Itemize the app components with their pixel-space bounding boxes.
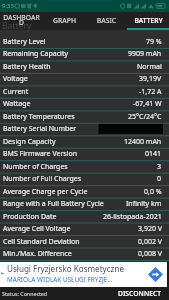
staticText: Cell Standard Deviation [3,237,80,247]
staticText: 26-listopada-2021 [103,212,162,222]
button[interactable]: Battery Temperatures [0,111,169,123]
staticText: BATTERY [129,16,168,25]
button[interactable]: Range with a Full Battery Cycle [0,198,169,210]
staticText: Number of Full Charges [3,174,82,184]
staticText: Min./Max. Difference [3,249,72,259]
staticText: Infinity km [126,199,162,209]
staticText: Normal [137,62,162,72]
button[interactable]: Number of Full Charges [0,173,169,185]
button[interactable]: Battery Health [0,61,169,73]
button[interactable]: Cell Standard Deviation [0,236,169,248]
staticText: 79 % [146,37,162,47]
button[interactable]: GRAPH [43,12,85,30]
staticText: BASIC [87,16,126,25]
staticText: 0,002 V [138,237,162,247]
staticText: 0,008 V [138,249,162,259]
staticText: Average Cell Voltage [3,224,71,234]
staticText: 0141 [145,149,162,159]
staticText: 9:33 [2,2,14,10]
staticText: Average Charge per Cycle [3,187,88,197]
button[interactable]: Design Capacity [0,136,169,148]
button[interactable]: Usługi Fryzjersko Kosmetyczne [0,262,167,287]
staticText: BMS Firmware Version [3,149,78,159]
staticText: 0,0 % [144,187,162,197]
button[interactable]: Battery Level [0,36,169,48]
staticText: Wattage [3,99,31,109]
button[interactable]: Battery Serial Number [0,123,169,135]
staticText: Battery Level [3,37,46,47]
staticText: MARIOLA WIDLAK USŁUGI FRYZJE... [7,275,113,284]
staticText: 9909 mAh [128,49,162,59]
staticText: GRAPH [45,16,84,25]
staticText: Battery Health [3,62,51,72]
staticText: 3 [157,162,162,172]
button[interactable]: Number of Charges [0,161,169,173]
button[interactable]: Production Date [0,211,169,223]
button[interactable]: DASHBOARD [0,12,43,30]
staticText: Battery Serial Number [3,124,77,134]
staticText: 25°C/24°C [128,112,162,122]
button[interactable]: Min./Max. Difference [0,248,169,260]
staticText: Design Capacity [3,137,56,147]
staticText: Battery [2,20,32,31]
button[interactable]: Voltage [0,73,169,85]
button[interactable]: BATTERY [127,12,169,30]
staticText: Number of Charges [3,162,68,172]
staticText: 3,920 V [138,224,162,234]
button[interactable]: DISCONNECT [116,287,164,300]
staticText: Production Date [3,212,57,222]
button[interactable]: Current [0,86,169,98]
staticText: DASHBOARD [2,13,41,27]
other: Open ad [148,267,163,282]
button[interactable]: Remaining Capacity [0,48,169,60]
staticText: 12400 mAh [124,137,162,147]
staticText: Voltage [3,74,28,84]
staticText: -1,72 A [139,87,162,97]
button[interactable]: Average Charge per Cycle [0,186,169,198]
staticText: Status: Connected [2,290,48,297]
staticText: -67,41 W [133,99,162,109]
staticText: DISCONNECT [118,289,162,298]
button[interactable]: Wattage [0,98,169,110]
staticText: Usługi Fryzjersko Kosmetyczne [7,263,124,274]
staticText: Remaining Capacity [3,49,69,59]
button[interactable]: BASIC [85,12,127,30]
staticText: 39,19V [139,74,162,84]
staticText: Range with a Full Battery Cycle [3,199,104,209]
button[interactable]: BMS Firmware Version [0,148,169,160]
button[interactable]: Average Cell Voltage [0,223,169,235]
staticText: Battery Temperatures [3,112,75,122]
staticText: Current [3,87,29,97]
staticText: 0 [157,174,162,184]
